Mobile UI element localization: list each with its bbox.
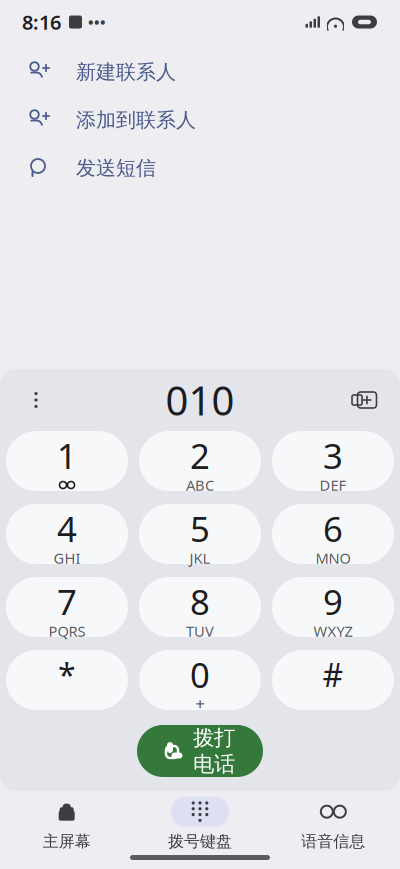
button[interactable]: 3 — [272, 431, 394, 491]
staticText: 0 — [190, 651, 210, 697]
button[interactable]: 拨号键盘 — [133, 795, 267, 853]
staticText: 新建联系人 — [76, 60, 176, 84]
button[interactable]: 添加到联系人 — [0, 96, 400, 144]
staticText: TUV — [186, 621, 214, 641]
button[interactable]: 1 — [6, 431, 128, 491]
staticText: 主屏幕 — [43, 832, 91, 851]
button[interactable]: More options — [14, 378, 58, 422]
staticText: 010 — [165, 373, 234, 426]
button[interactable]: 9 — [272, 577, 394, 637]
staticText: 3 — [323, 432, 343, 478]
staticText: 语音信息 — [301, 832, 365, 851]
staticText: 5 — [190, 505, 210, 551]
button[interactable]: 拨打电话 — [137, 725, 263, 777]
staticText: 发送短信 — [76, 156, 156, 180]
button[interactable]: 4 — [6, 504, 128, 564]
staticText: PQRS — [48, 621, 85, 641]
staticText: 8:16 — [22, 9, 61, 35]
button[interactable]: * — [6, 650, 128, 710]
button[interactable]: 7 — [6, 577, 128, 637]
staticText: DEF — [319, 475, 346, 495]
staticText: 添加到联系人 — [76, 108, 196, 132]
staticText: 4 — [57, 505, 77, 551]
staticText: * — [58, 653, 76, 696]
staticText: 拨号键盘 — [168, 832, 232, 851]
staticText: # — [322, 653, 343, 696]
staticText: GHI — [53, 548, 80, 568]
staticText: 2 — [190, 432, 210, 478]
button[interactable]: Delete — [342, 378, 386, 422]
button[interactable]: 主屏幕 — [0, 795, 133, 853]
staticText: MNO — [315, 548, 350, 568]
button[interactable]: 新建联系人 — [0, 48, 400, 96]
button[interactable]: 2 — [139, 431, 261, 491]
staticText: ••• — [88, 12, 106, 32]
button[interactable]: 6 — [272, 504, 394, 564]
staticText: ABC — [186, 475, 214, 495]
staticText: 1 — [57, 432, 77, 478]
staticText: 拨打电话 — [193, 725, 235, 777]
button[interactable]: 5 — [139, 504, 261, 564]
button[interactable]: 发送短信 — [0, 144, 400, 192]
staticText: JKL — [189, 548, 210, 568]
staticText: 6 — [323, 505, 343, 551]
button[interactable]: 语音信息 — [267, 795, 400, 853]
button[interactable]: 0 — [139, 650, 261, 710]
staticText: 9 — [323, 578, 343, 624]
button[interactable]: # — [272, 650, 394, 710]
staticText: + — [195, 693, 204, 715]
button[interactable]: 8 — [139, 577, 261, 637]
staticText: WXYZ — [313, 621, 352, 641]
staticText: 7 — [57, 578, 77, 624]
staticText: 8 — [190, 578, 210, 624]
